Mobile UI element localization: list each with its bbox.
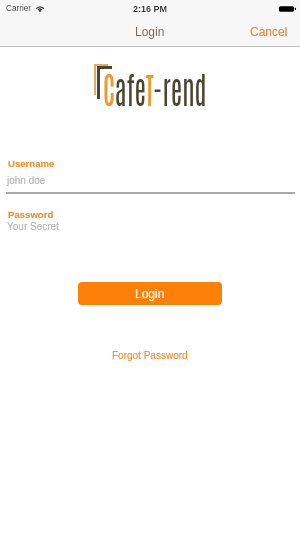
staticText: Your Secret: [7, 221, 59, 232]
staticText: john doe: [7, 175, 46, 186]
other: Battery full: [279, 5, 296, 13]
staticText: 2:16 PM: [133, 4, 168, 14]
staticText: Login: [135, 25, 165, 38]
staticText: Forgot Password: [112, 350, 188, 361]
staticText: Username: [8, 158, 55, 169]
button[interactable]: Forgot Password: [106, 345, 194, 366]
staticText: Carrier: [6, 4, 32, 13]
button[interactable]: Cancel: [240, 19, 300, 45]
staticText: CafeT-rend: [103, 64, 207, 111]
button[interactable]: Login: [78, 282, 222, 305]
staticText: Cancel: [250, 25, 288, 38]
other: Wi-Fi signal: [35, 5, 45, 12]
staticText: Password: [8, 209, 54, 220]
staticText: Login: [135, 287, 165, 300]
